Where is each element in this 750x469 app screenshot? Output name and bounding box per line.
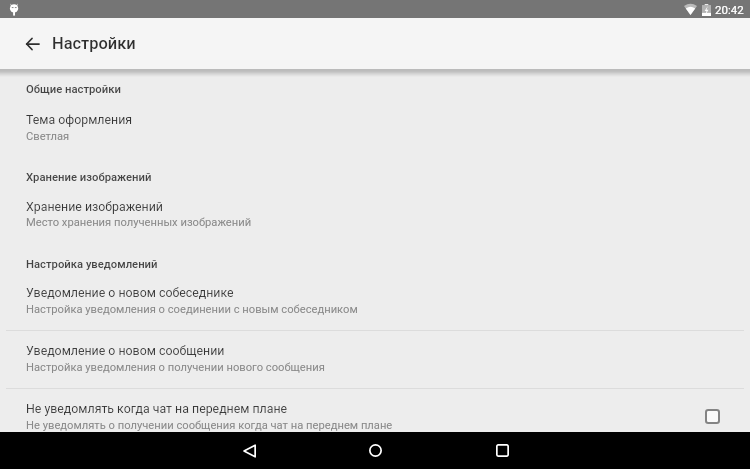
- staticText: Настройка уведомления о соединении с нов…: [26, 303, 358, 316]
- staticText: Не уведомлять о получении сообщения когд…: [26, 419, 393, 432]
- staticText: Уведомление о новом собеседнике: [26, 286, 234, 300]
- staticText: Тема оформления: [26, 113, 133, 127]
- button[interactable]: Хранение изображений: [0, 192, 750, 220]
- staticText: Настройка уведомлений: [26, 258, 158, 271]
- button[interactable]: Уведомление о новом сообщении: [0, 336, 750, 364]
- staticText: Хранение изображений: [26, 200, 163, 214]
- button[interactable]: Не уведомлять когда чат на переднем план…: [0, 394, 750, 422]
- button[interactable]: Уведомление о новом собеседнике: [0, 278, 750, 306]
- button[interactable]: Главный экран: [354, 432, 396, 469]
- staticText: Уведомление о новом сообщении: [26, 344, 225, 358]
- button[interactable]: Тема оформления: [0, 105, 750, 133]
- staticText: Не уведомлять когда чат на переднем план…: [26, 402, 288, 416]
- staticText: Хранение изображений: [26, 171, 152, 184]
- staticText: Светлая: [26, 130, 70, 143]
- staticText: 20:42: [715, 3, 744, 16]
- staticText: Настройки: [52, 34, 136, 53]
- staticText: Место хранения полученных изображений: [26, 216, 252, 229]
- button[interactable]: Назад: [228, 432, 270, 469]
- staticText: Общие настройки: [26, 83, 121, 96]
- button[interactable]: Не уведомлять когда чат на переднем план…: [698, 402, 726, 430]
- staticText: Настройка уведомления о получении нового…: [26, 361, 325, 374]
- button[interactable]: Назад: [14, 26, 50, 62]
- button[interactable]: Обзор: [481, 432, 523, 469]
